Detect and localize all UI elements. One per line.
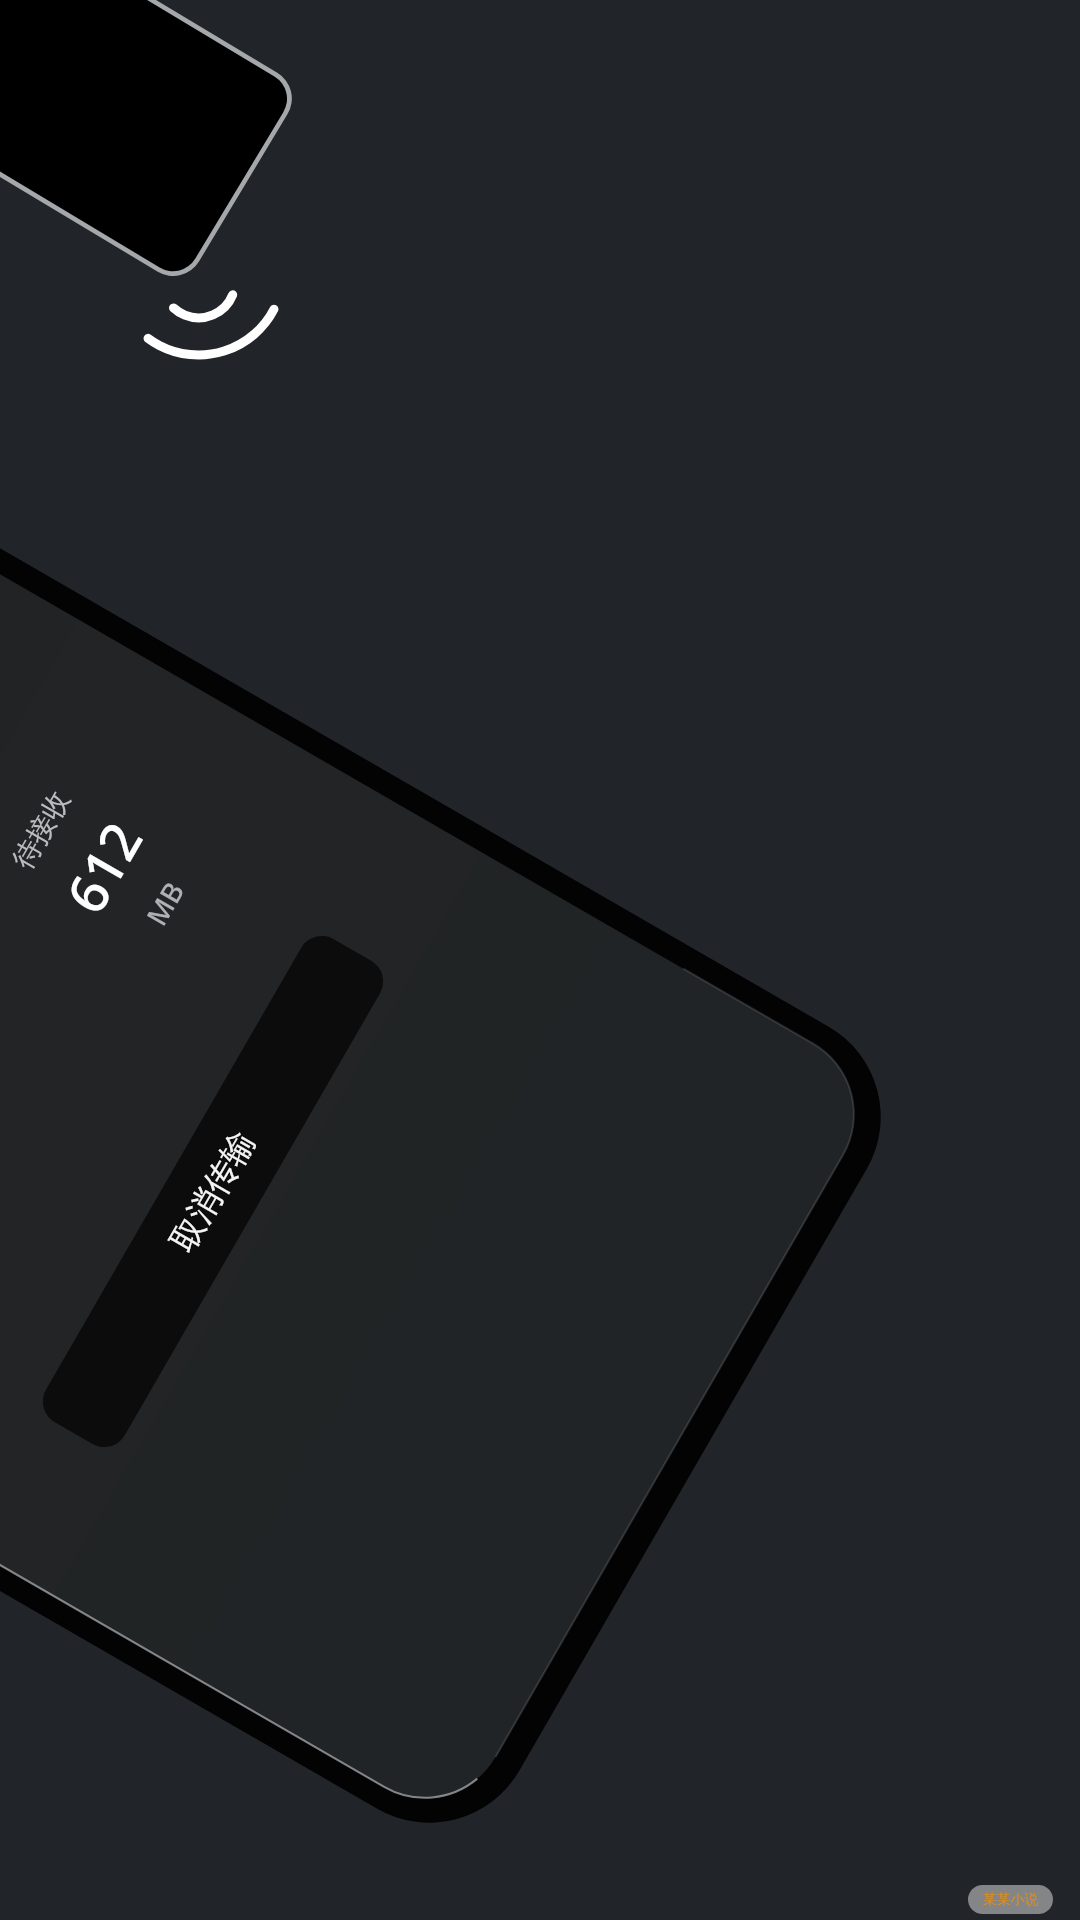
button[interactable]: 某某小说 xyxy=(968,1885,1053,1914)
button[interactable]: 取消传输 xyxy=(34,927,392,1456)
